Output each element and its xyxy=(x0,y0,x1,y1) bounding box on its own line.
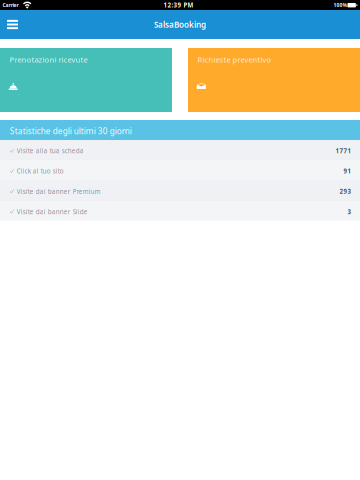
staticText: Prenotazioni ricevute xyxy=(10,55,88,65)
staticText: SalsaBooking xyxy=(154,19,206,30)
staticText: Visite dai banner Slide xyxy=(17,207,88,216)
staticText: 100% xyxy=(333,2,346,8)
button[interactable]: Prenotazioni ricevute xyxy=(0,48,172,112)
staticText: Richieste preventivo xyxy=(198,55,272,65)
staticText: 91 xyxy=(343,167,351,175)
staticText: 1771 xyxy=(335,147,351,155)
staticText: Statistiche degli ultimi 30 giorni xyxy=(10,125,132,137)
button[interactable]: Menu xyxy=(0,10,28,39)
staticText: Click al tuo sito xyxy=(17,167,64,175)
staticText: 3 xyxy=(347,208,351,216)
staticText: Visite dai banner Premium xyxy=(17,187,101,196)
button[interactable]: Click al tuo sito xyxy=(0,160,360,180)
staticText: Carrier xyxy=(2,2,18,8)
button[interactable]: Visite dai banner Premium xyxy=(0,181,360,200)
button[interactable]: Visite dai banner Slide xyxy=(0,201,360,221)
staticText: 12:39 PM xyxy=(163,1,193,9)
button[interactable]: Richieste preventivo xyxy=(188,48,360,112)
staticText: 293 xyxy=(339,187,351,196)
button[interactable]: Visite alla tua scheda xyxy=(0,140,360,160)
staticText: Visite alla tua scheda xyxy=(17,147,84,155)
